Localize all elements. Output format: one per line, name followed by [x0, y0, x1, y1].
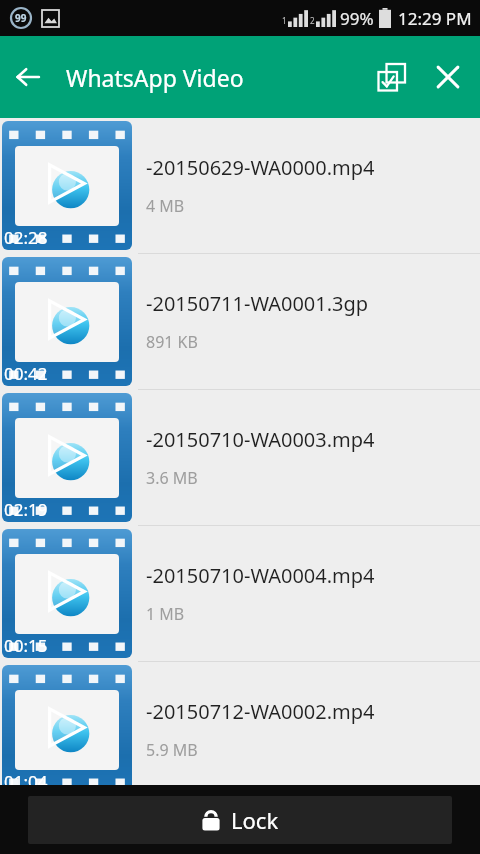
staticText: 4 MB [146, 195, 185, 217]
button[interactable]: 02:28 [0, 118, 480, 253]
button[interactable]: 01:04 [0, 662, 480, 797]
staticText: 1 [282, 15, 287, 26]
button[interactable]: Lock [28, 796, 452, 844]
staticText: 00:15 [4, 634, 48, 657]
button[interactable]: Select all [364, 49, 420, 105]
button[interactable]: 02:19 [0, 390, 480, 525]
staticText: -20150711-WA0001.3gp [146, 290, 369, 317]
staticText: WhatsApp Video [66, 62, 364, 93]
staticText: 01:04 [4, 770, 48, 793]
staticText: -20150710-WA0003.mp4 [146, 426, 375, 453]
staticText: 3.6 MB [146, 467, 198, 489]
staticText: 99% [340, 7, 374, 30]
staticText: -20150629-WA0000.mp4 [146, 154, 375, 181]
staticText: 2 [310, 15, 315, 26]
staticText: 891 KB [146, 331, 198, 353]
staticText: 02:19 [4, 498, 48, 521]
staticText: -20150712-WA0002.mp4 [146, 698, 375, 725]
button[interactable]: Close [420, 49, 476, 105]
staticText: 99 [15, 11, 27, 25]
staticText: 12:29 PM [398, 7, 472, 30]
button[interactable]: 00:15 [0, 526, 480, 661]
staticText: Lock [231, 805, 279, 835]
button[interactable]: Back [0, 49, 56, 105]
staticText: 02:28 [4, 226, 48, 249]
button[interactable]: 00:42 [0, 254, 480, 389]
staticText: 5.9 MB [146, 739, 198, 761]
staticText: 00:42 [4, 362, 48, 385]
staticText: -20150710-WA0004.mp4 [146, 562, 375, 589]
staticText: 1 MB [146, 603, 185, 625]
